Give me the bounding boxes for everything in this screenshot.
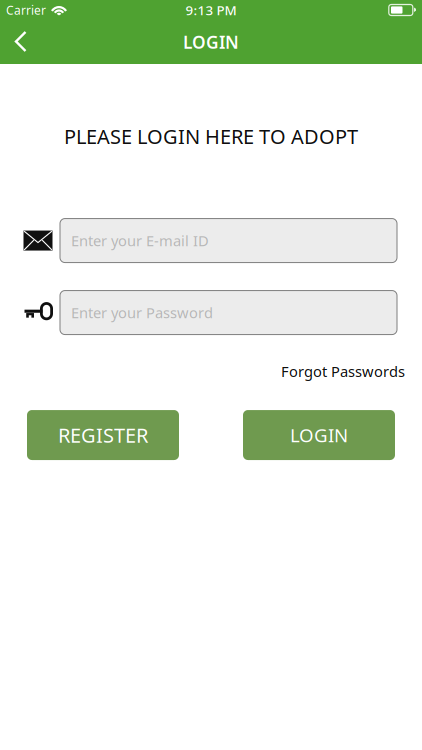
staticText: Forgot Passwords xyxy=(281,362,405,381)
staticText: LOGIN xyxy=(183,30,239,53)
staticText: Enter your E-mail ID xyxy=(71,231,209,250)
staticText: PLEASE LOGIN HERE TO ADOPT xyxy=(64,123,358,150)
button[interactable]: Back xyxy=(0,20,42,64)
button[interactable]: LOGIN xyxy=(243,410,395,460)
button[interactable]: Enter your E-mail ID xyxy=(60,219,397,263)
button[interactable]: REGISTER xyxy=(27,410,179,460)
staticText: Enter your Password xyxy=(71,303,213,322)
staticText: 9:13 PM xyxy=(185,1,236,19)
staticText: LOGIN xyxy=(290,423,348,447)
staticText: Carrier xyxy=(6,2,46,18)
button[interactable]: Forgot Passwords xyxy=(281,362,405,381)
staticText: REGISTER xyxy=(58,422,148,448)
button[interactable]: Enter your Password xyxy=(60,291,397,335)
